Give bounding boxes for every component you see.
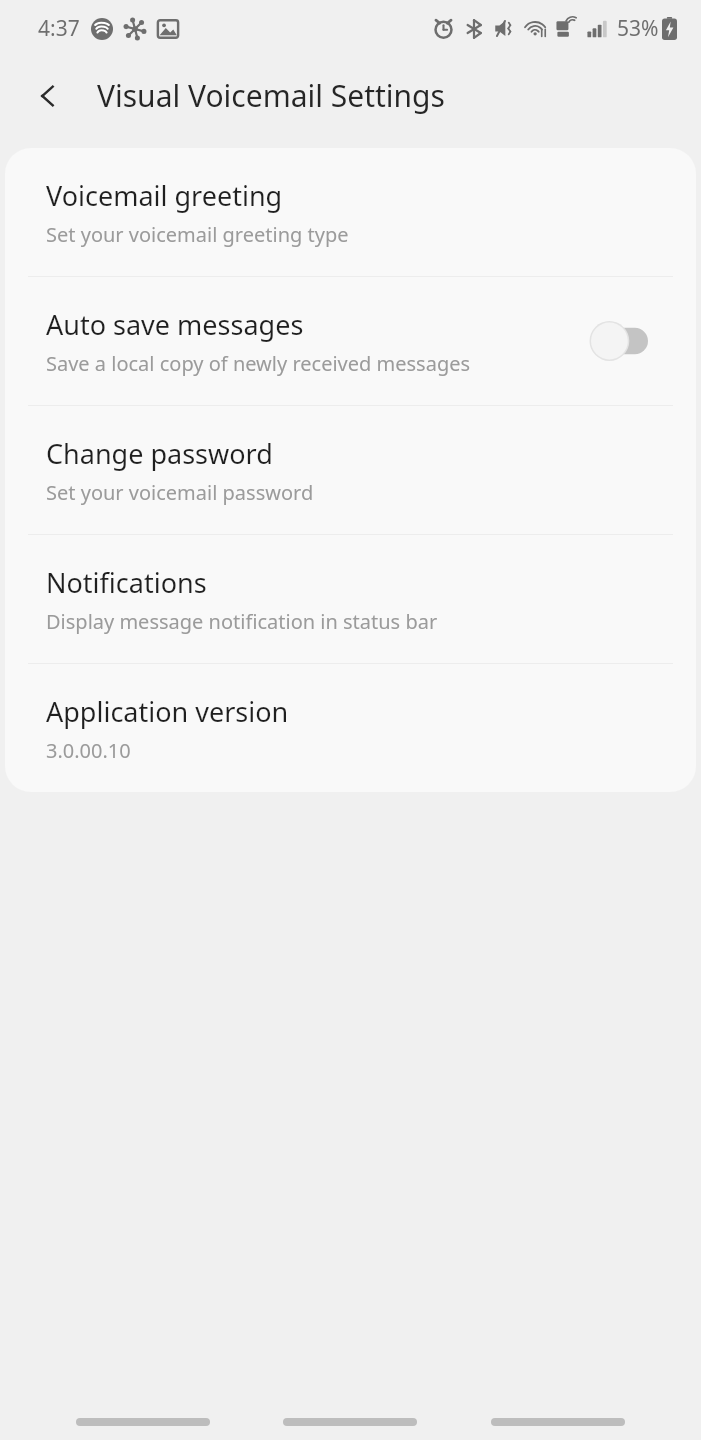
staticText: Voicemail greeting [46, 177, 283, 214]
staticText: Set your voicemail password [46, 479, 314, 506]
button[interactable]: Application version [5, 664, 696, 792]
button[interactable]: Notifications [5, 535, 696, 663]
button[interactable]: Navigate up [20, 68, 76, 124]
button[interactable]: Back [491, 1418, 625, 1426]
staticText: Display message notification in status b… [46, 608, 438, 635]
staticText: Change password [46, 435, 273, 472]
button[interactable]: Home [283, 1418, 417, 1426]
button[interactable]: Auto save messages [5, 277, 696, 405]
staticText: 4:37 [38, 14, 80, 43]
staticText: Application version [46, 693, 289, 730]
button[interactable]: Voicemail greeting [5, 148, 696, 276]
button[interactable]: Change password [5, 406, 696, 534]
staticText: 3.0.00.10 [46, 737, 131, 764]
staticText: Notifications [46, 564, 207, 601]
staticText: Auto save messages [46, 306, 304, 343]
staticText: Visual Voicemail Settings [97, 75, 445, 116]
button[interactable]: Auto save messages toggle, off [588, 317, 650, 365]
staticText: Save a local copy of newly received mess… [46, 350, 471, 377]
button[interactable]: Recents [76, 1418, 210, 1426]
staticText: Set your voicemail greeting type [46, 221, 349, 248]
staticText: 53% [617, 14, 659, 43]
